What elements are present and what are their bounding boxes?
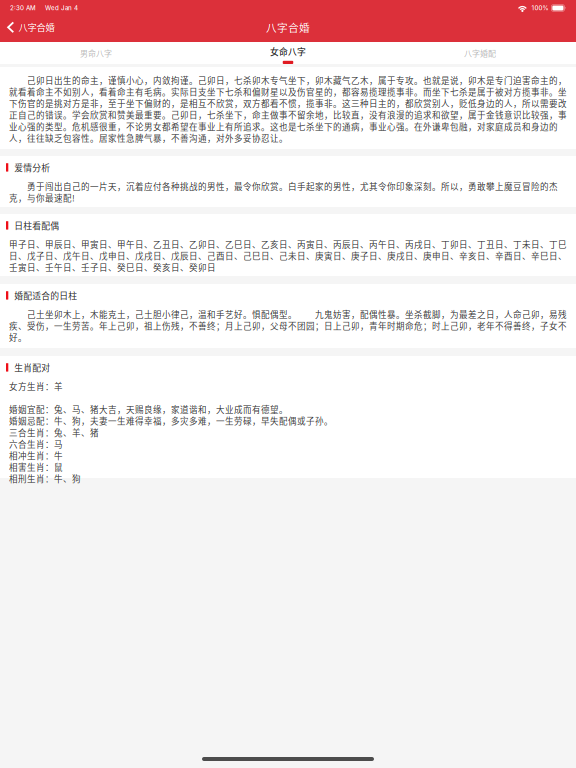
- staticText: Wed Jan 4: [45, 4, 78, 12]
- staticText: 日柱看配偶: [14, 219, 59, 232]
- staticText: 爱情分析: [14, 161, 50, 174]
- button[interactable]: 八字婚配: [384, 42, 576, 64]
- staticText: 男命八字: [80, 47, 112, 59]
- staticText: 八字合婚: [18, 20, 54, 34]
- staticText: 八字合婚: [266, 19, 310, 35]
- staticText: 生肖配对: [14, 361, 50, 374]
- staticText: 2:30 AM: [10, 4, 36, 12]
- staticText: 己土坐卯木上，木能克土，己土胆小律己，温和手艺好。惧配偶型。 九鬼妨害，配偶性暴…: [9, 308, 567, 343]
- staticText: 女方生肖：羊 婚姻宜配：兔、马、猪大吉，天赐良缘，家道谐和，大业成而有德望。 婚…: [9, 380, 333, 485]
- staticText: 勇于闯出自己的一片天，沉着应付各种挑战的男性，最令你欣赏。白手起家的男性，尤其令…: [9, 180, 558, 204]
- staticText: 女命八字: [270, 45, 306, 58]
- staticText: 100%: [531, 4, 548, 12]
- staticText: 己卯日出生的命主，谨慎小心，内敛拘谨。己卯日，七杀卯木专气坐下，卯木藏气乙木，属…: [9, 74, 567, 144]
- staticText: 甲子日、甲辰日、甲寅日、甲午日、乙丑日、乙卯日、乙巳日、乙亥日、丙寅日、丙辰日、…: [9, 238, 567, 273]
- button[interactable]: 八字合婚: [0, 16, 64, 38]
- button[interactable]: 女命八字: [192, 42, 384, 64]
- staticText: 婚配适合的日柱: [14, 289, 77, 302]
- staticText: 八字婚配: [464, 47, 496, 59]
- button[interactable]: 男命八字: [0, 42, 192, 64]
